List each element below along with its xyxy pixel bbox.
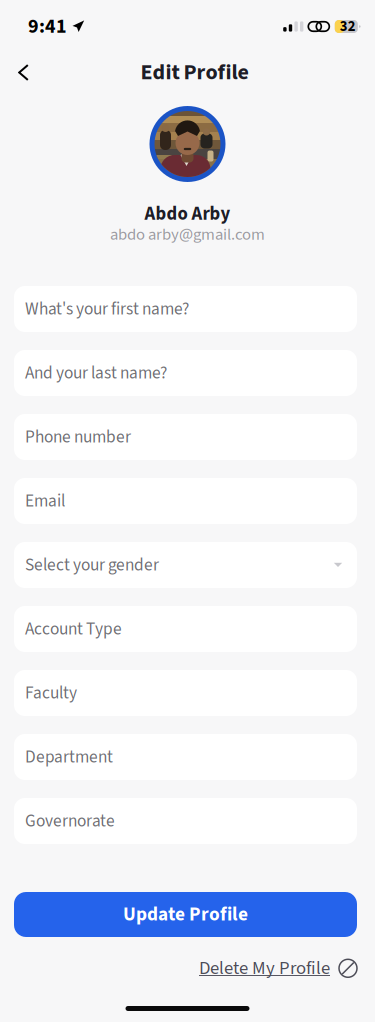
staticText: 32: [340, 16, 356, 37]
staticText: And your last name?: [25, 361, 167, 385]
staticText: What's your first name?: [25, 297, 189, 321]
staticText: 9:41: [28, 12, 67, 41]
staticText: Phone number: [25, 425, 131, 449]
button[interactable]: Account Type: [14, 606, 357, 652]
staticText: Select your gender: [25, 553, 159, 577]
staticText: Abdo Arby: [144, 201, 230, 227]
staticText: Department: [25, 745, 113, 769]
staticText: abdo arby@gmail.com: [110, 223, 265, 246]
staticText: Account Type: [25, 617, 122, 641]
button[interactable]: Governorate: [14, 798, 357, 844]
button[interactable]: What's your first name?: [14, 286, 357, 332]
button[interactable]: Faculty: [14, 670, 357, 716]
staticText: Faculty: [25, 681, 77, 705]
button[interactable]: Update Profile: [14, 892, 357, 937]
staticText: Delete My Profile: [199, 955, 330, 982]
button[interactable]: Select your gender: [14, 542, 357, 588]
button[interactable]: Department: [14, 734, 357, 780]
staticText: Edit Profile: [140, 57, 248, 88]
button[interactable]: Back: [0, 53, 46, 92]
button[interactable]: Phone number: [14, 414, 357, 460]
staticText: Update Profile: [123, 901, 248, 928]
button[interactable]: Email: [14, 478, 357, 524]
staticText: Email: [25, 489, 65, 513]
button[interactable]: Delete My Profile: [199, 955, 357, 982]
button[interactable]: And your last name?: [14, 350, 357, 396]
staticText: Governorate: [25, 809, 115, 833]
